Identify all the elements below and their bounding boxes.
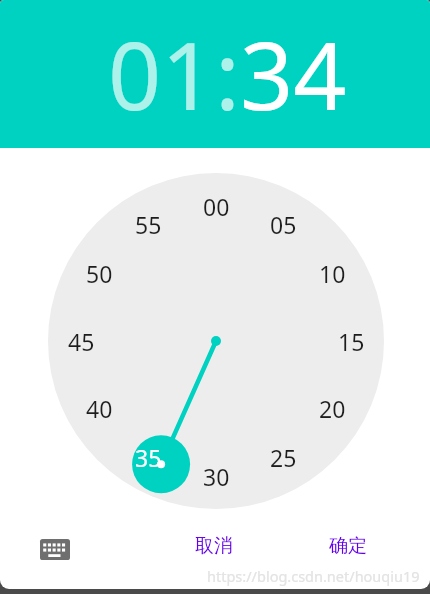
button[interactable]: 35 [126,441,170,473]
staticText: 35 [135,442,162,473]
button[interactable]: 20 [310,392,354,424]
button[interactable]: 00 [194,190,238,222]
staticText: 30 [203,461,230,492]
button[interactable]: 01 [108,11,215,138]
staticText: 20 [319,393,346,424]
button[interactable]: 40 [77,392,121,424]
staticText: 40 [86,393,113,424]
button[interactable]: 50 [77,257,121,289]
button[interactable]: 15 [329,325,373,357]
button[interactable]: 34 [240,11,347,138]
button[interactable]: 25 [261,441,305,473]
button[interactable]: 55 [126,208,170,240]
button[interactable]: 45 [59,325,103,357]
button[interactable]: 10 [310,257,354,289]
staticText: 确定 [329,534,367,558]
staticText: : [215,11,240,138]
button[interactable] [34,534,75,565]
staticText: 05 [270,209,297,240]
button[interactable]: 确定 [318,527,378,565]
staticText: 10 [319,258,346,289]
staticText: 00 [203,191,230,222]
staticText: 45 [68,326,95,357]
staticText: 50 [86,258,113,289]
button[interactable]: 30 [194,460,238,492]
staticText: 25 [270,442,297,473]
staticText: 取消 [195,534,233,558]
button[interactable]: 取消 [184,527,244,565]
staticText: 55 [135,209,162,240]
staticText: 15 [338,326,365,357]
staticText: https://blog.csdn.net/houqiu19 [207,566,420,586]
button[interactable]: 05 [261,208,305,240]
